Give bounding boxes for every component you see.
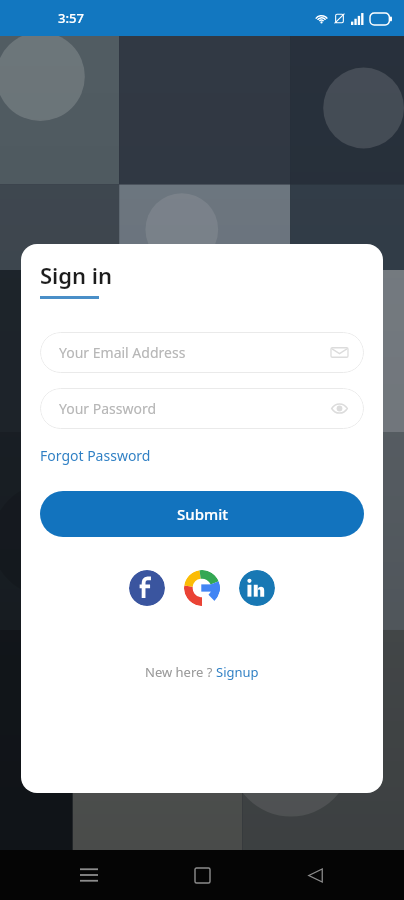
button[interactable]: Submit xyxy=(40,491,364,537)
staticText: Forgot Password xyxy=(40,446,151,465)
button[interactable]: Forgot Password xyxy=(40,446,151,465)
button[interactable]: Password input xyxy=(40,388,364,429)
button[interactable]: Sign in with LinkedIn xyxy=(239,570,275,606)
button[interactable]: Home xyxy=(178,851,226,899)
button[interactable]: Email address input xyxy=(40,332,364,373)
button[interactable]: Back xyxy=(291,851,339,899)
button[interactable]: Sign in with Facebook xyxy=(129,570,165,606)
button[interactable]: Recent apps xyxy=(65,851,113,899)
button[interactable]: Signup xyxy=(216,663,259,681)
staticText: Submit xyxy=(177,504,228,524)
staticText: Sign in xyxy=(40,260,113,290)
staticText: New here ? xyxy=(145,663,216,681)
staticText: Signup xyxy=(216,663,259,681)
staticText: Your Email Address xyxy=(59,343,186,362)
button[interactable]: Sign in with Google xyxy=(184,570,220,606)
staticText: 3:57 xyxy=(58,9,84,27)
staticText: Your Password xyxy=(59,399,157,418)
